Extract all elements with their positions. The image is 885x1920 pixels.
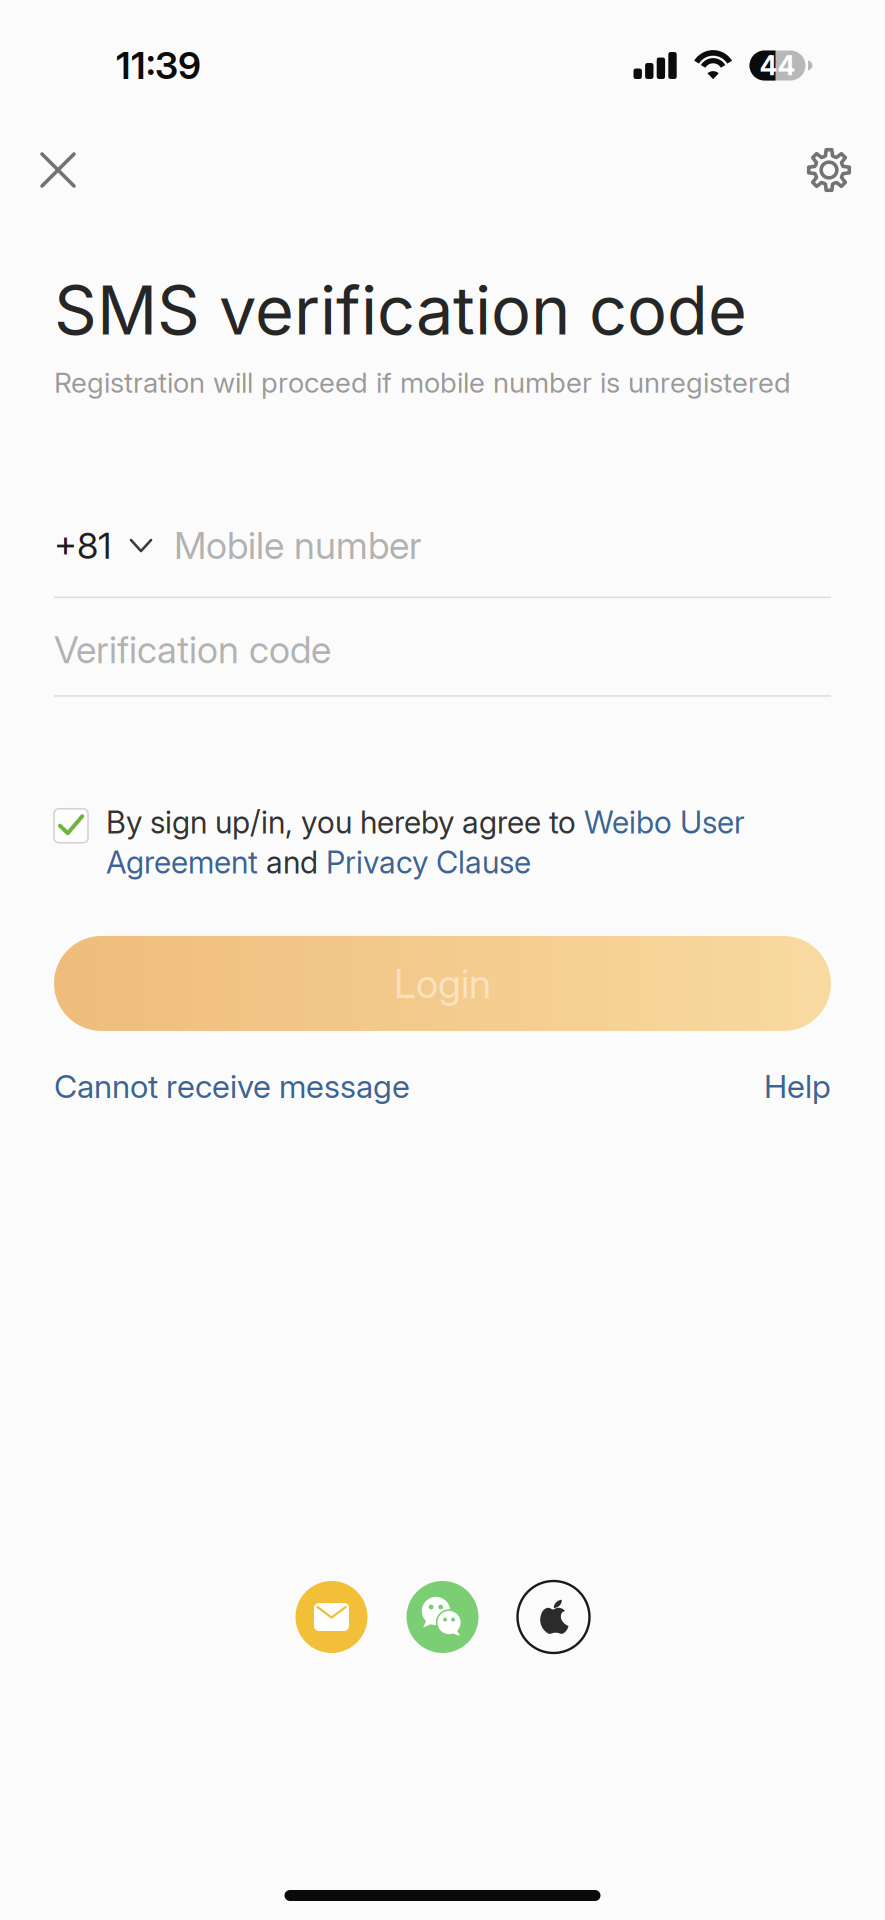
button[interactable]: Agree to terms	[54, 809, 88, 843]
button[interactable]: Settings	[791, 132, 867, 208]
staticText: By sign up/in, you hereby agree to	[106, 804, 584, 841]
staticText: Privacy Clause	[326, 844, 531, 881]
staticText: +81	[54, 524, 111, 567]
staticText: Cannot receive message	[54, 1067, 410, 1106]
button[interactable]: Sign in with Apple	[517, 1581, 589, 1653]
staticText: 44	[759, 49, 795, 82]
button[interactable]: Cannot receive message	[54, 1061, 410, 1112]
staticText: and	[258, 844, 326, 881]
button[interactable]: Sign in with email	[295, 1581, 367, 1653]
button[interactable]: Login	[0, 936, 885, 1031]
button[interactable]: Help	[764, 1061, 831, 1112]
staticText: Verification code	[54, 627, 331, 672]
staticText: Weibo User	[584, 804, 745, 841]
staticText: Registration will proceed if mobile numb…	[54, 366, 791, 400]
staticText: Login	[394, 959, 491, 1008]
button[interactable]: Sign in with WeChat	[406, 1581, 478, 1653]
button[interactable]: Country code +81	[54, 516, 151, 575]
button[interactable]: Verification code	[54, 604, 831, 695]
staticText: SMS verification code	[54, 270, 747, 351]
staticText: Help	[764, 1067, 831, 1106]
staticText: 11:39	[116, 43, 201, 88]
staticText: Agreement	[106, 844, 258, 881]
button[interactable]: Close	[20, 132, 96, 208]
staticText: Mobile number	[174, 523, 421, 568]
button[interactable]: Mobile number	[151, 523, 831, 568]
